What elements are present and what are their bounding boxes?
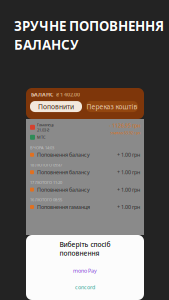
staticText: БАЛАНС (31, 91, 53, 98)
staticText: 18 ЛЮТОГО 09:47 (30, 162, 62, 168)
staticText: Поповнити (38, 102, 74, 111)
button[interactable]: ВЧОРА 14:03 (26, 143, 144, 160)
staticText: 21.03 ₴ (37, 127, 49, 133)
staticText: ЗРУЧНЕ ПОПОВНЕННЯ (14, 17, 164, 35)
staticText: + 1.00 грн (117, 151, 140, 158)
staticText: Гаманець (37, 122, 54, 127)
staticText: МТС (37, 135, 46, 140)
staticText: + 1.00 грн (117, 186, 140, 193)
staticText: 16 ЛЮТОГО 08:55 (30, 197, 62, 202)
staticText: Поповнення балансу (37, 151, 90, 158)
staticText: Поповнення гаманця (37, 203, 90, 210)
button[interactable]: Переказ коштів (86, 101, 138, 112)
staticText: - 1126.95 грн (109, 122, 140, 129)
staticText: + 1.00 грн (117, 203, 140, 210)
staticText: + 1.00 грн (117, 169, 140, 176)
staticText: БАЛАНСУ (14, 36, 79, 53)
staticText: ₴ 1 402.00 (56, 91, 80, 98)
staticText: ВЧОРА 14:03 (30, 145, 54, 150)
staticText: Виберіть спосіб поповнення (59, 240, 110, 258)
button[interactable]: 17 ЛЮТОГО 11:20 (26, 178, 144, 195)
staticText: Поповнення балансу (37, 169, 90, 176)
staticText: concord (75, 283, 95, 291)
staticText: mono Pay (73, 267, 97, 274)
staticText: 17 ЛЮТОГО 11:20 (30, 180, 62, 185)
button[interactable]: 16 ЛЮТОГО 08:55 (26, 195, 144, 212)
staticText: Переказ коштів (86, 102, 137, 111)
button[interactable]: Поповнити (30, 101, 82, 112)
staticText: Поповнення балансу (37, 186, 90, 193)
staticText: знижка 63.92 грн (110, 130, 140, 135)
button[interactable]: 18 ЛЮТОГО 09:47 (26, 160, 144, 178)
